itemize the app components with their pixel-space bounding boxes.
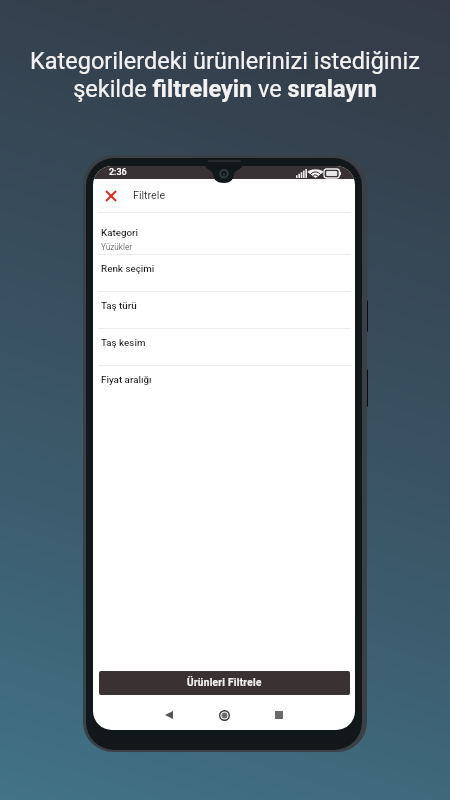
button[interactable]: Home (210, 701, 238, 729)
staticText: Fiyat aralığı (101, 374, 152, 385)
staticText: Ürünleri Filtrele (187, 677, 262, 689)
staticText: Kategorilerdeki ürünlerinizi istediğiniz… (30, 47, 420, 103)
staticText: Renk seçimi (101, 263, 155, 274)
button[interactable]: Kategori (93, 213, 355, 254)
button[interactable]: Taş türü (93, 292, 355, 328)
button[interactable]: Back (155, 701, 183, 729)
staticText: Yüzükler (101, 242, 133, 252)
staticText: 2:36 (109, 167, 127, 178)
button[interactable]: Close (96, 181, 126, 211)
button[interactable]: Renk seçimi (93, 255, 355, 291)
button[interactable]: Ürünleri Filtrele (99, 671, 350, 695)
button[interactable]: Fiyat aralığı (93, 366, 355, 402)
button[interactable]: Taş kesim (93, 329, 355, 365)
button[interactable]: Recents (265, 701, 293, 729)
staticText: Kategori (101, 227, 139, 238)
staticText: Taş türü (101, 300, 137, 311)
staticText: Taş kesim (101, 337, 146, 348)
staticText: Filtrele (133, 189, 166, 202)
